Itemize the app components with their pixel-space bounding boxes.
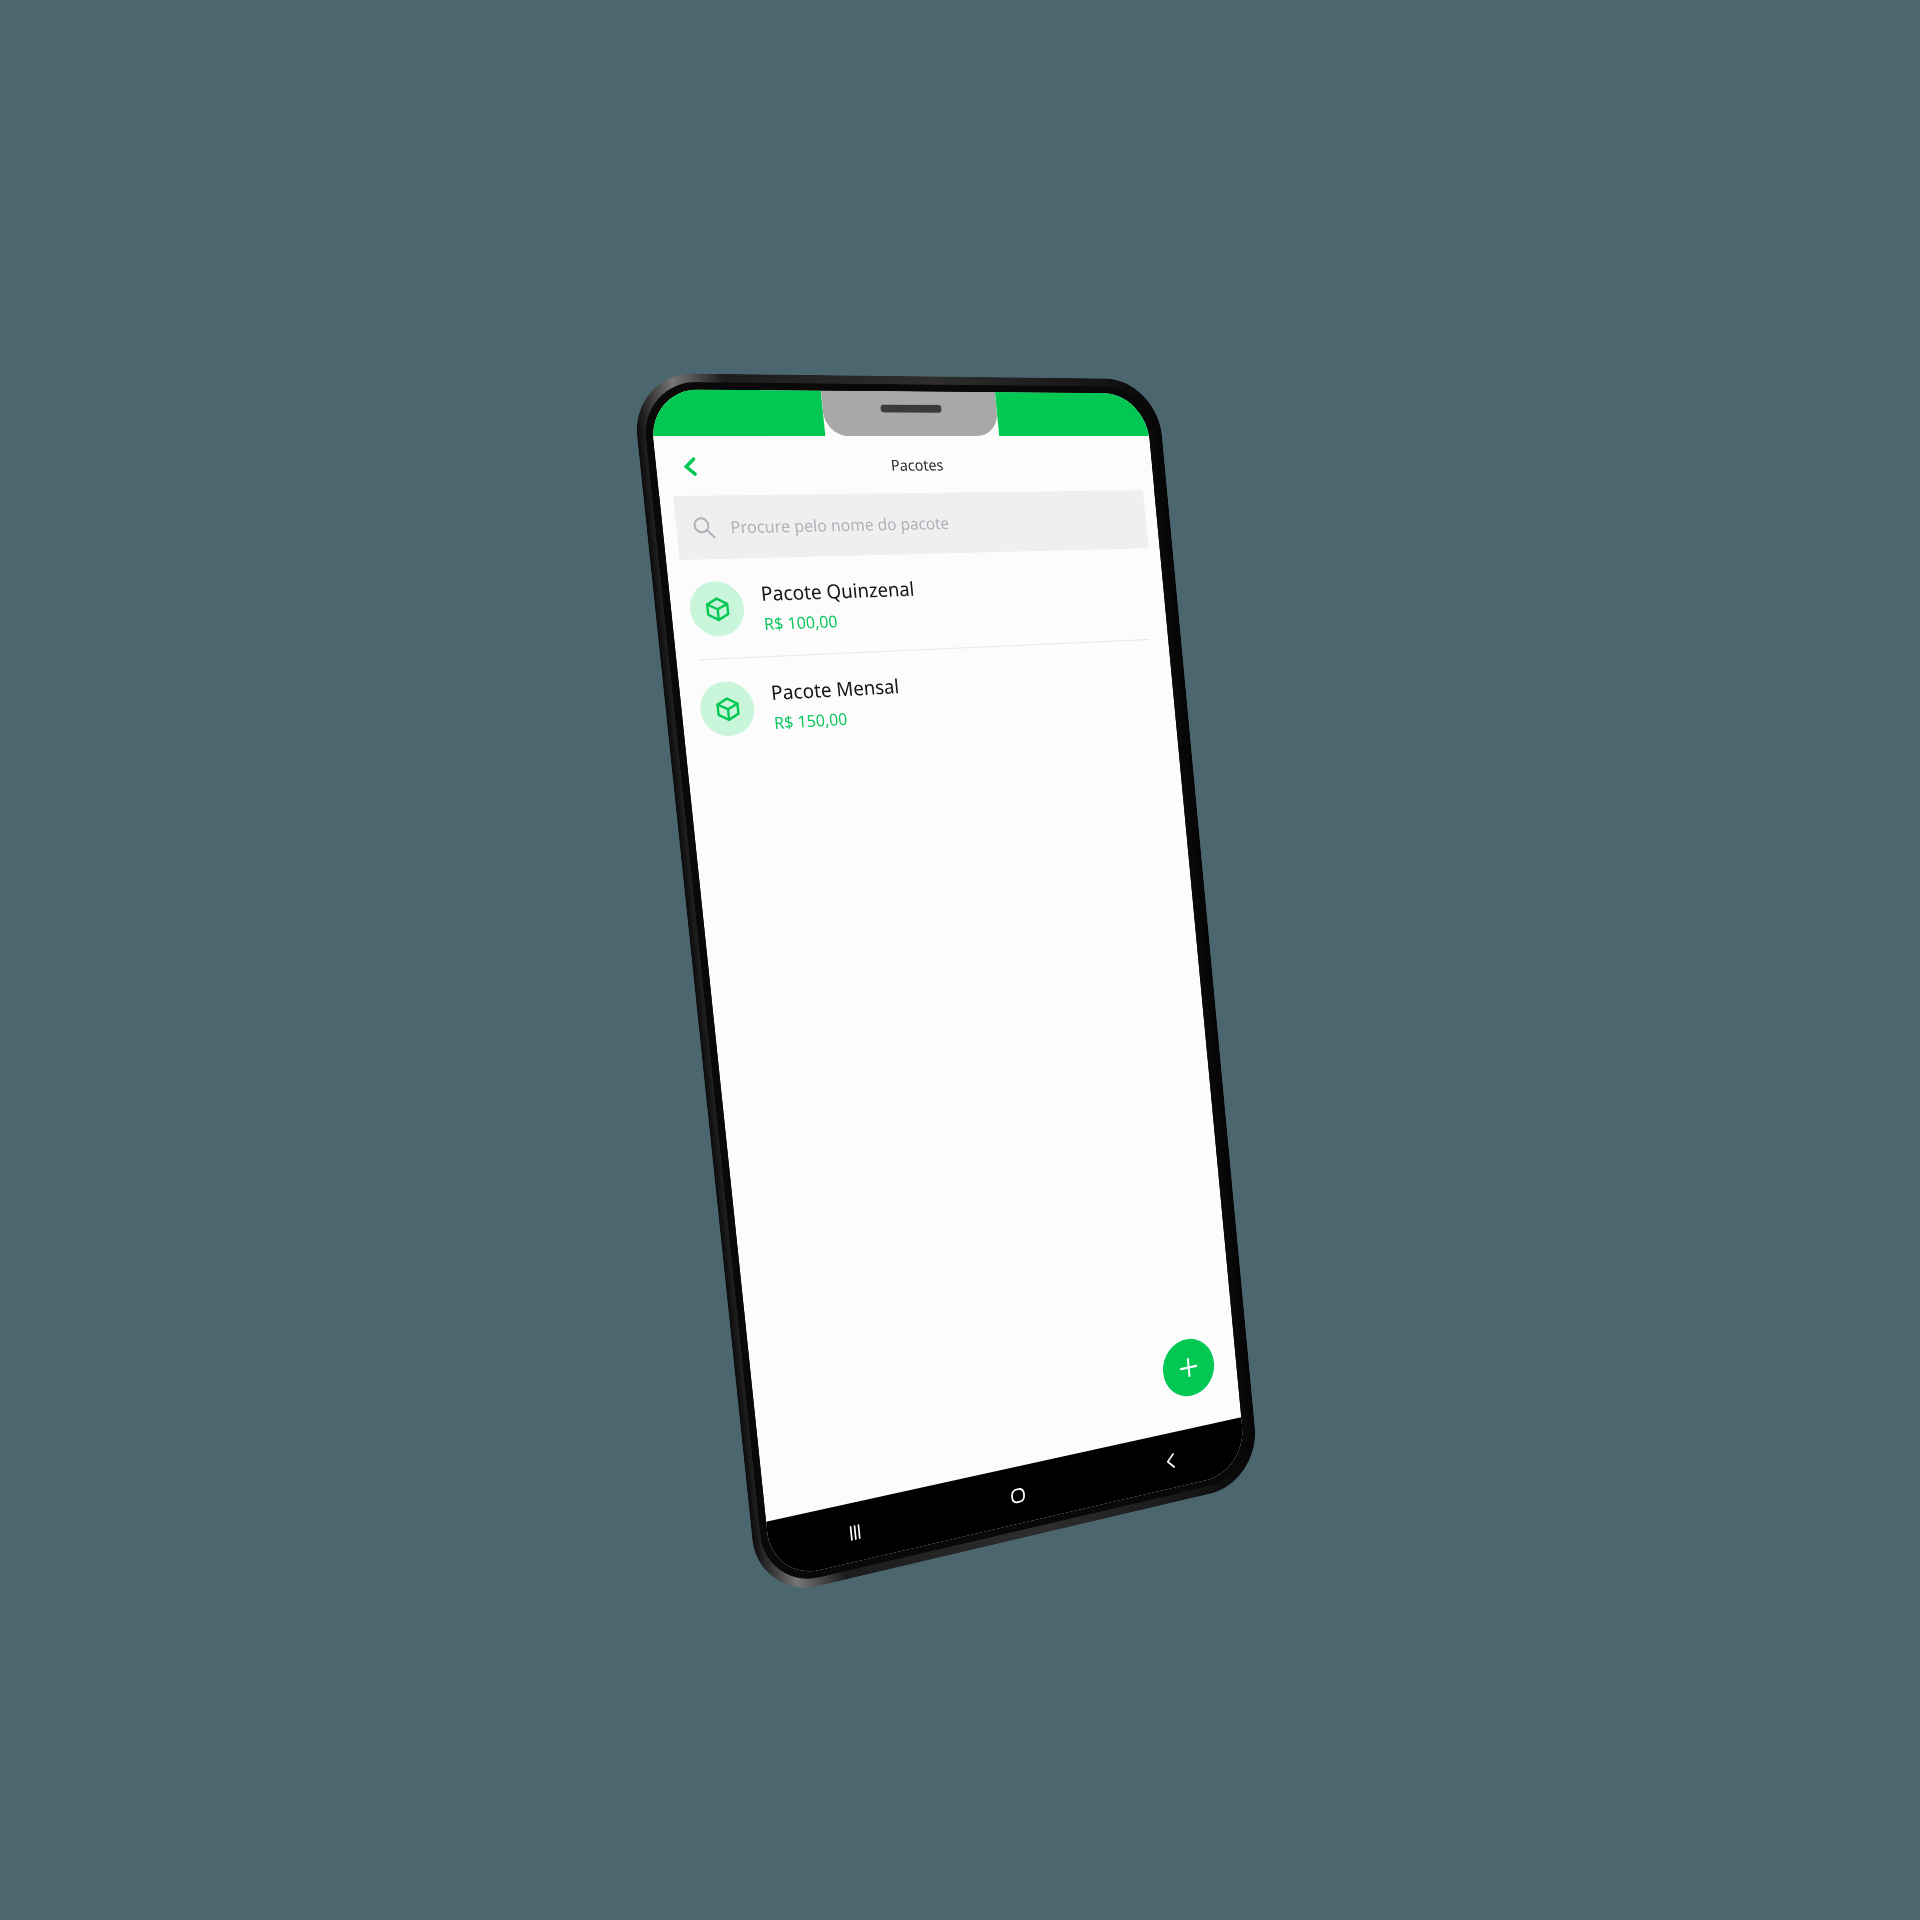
button[interactable]: Voltar: [1093, 1417, 1246, 1505]
staticText: R$ 100,00: [763, 610, 839, 635]
button[interactable]: Procure pelo nome do pacote: [673, 490, 1148, 560]
button[interactable]: Pacote Mensal: [676, 639, 1177, 761]
button[interactable]: Recentes: [766, 1485, 940, 1581]
button[interactable]: Voltar: [664, 443, 715, 490]
staticText: Procure pelo nome do pacote: [729, 512, 950, 539]
staticText: Pacote Quinzenal: [759, 575, 916, 607]
staticText: Pacotes: [890, 454, 944, 475]
button[interactable]: Adicionar pacote: [1160, 1334, 1217, 1401]
staticText: Pacote Mensal: [770, 673, 901, 706]
button[interactable]: Início: [935, 1450, 1098, 1542]
staticText: R$ 150,00: [773, 707, 849, 734]
button[interactable]: Pacote Quinzenal: [666, 548, 1168, 660]
